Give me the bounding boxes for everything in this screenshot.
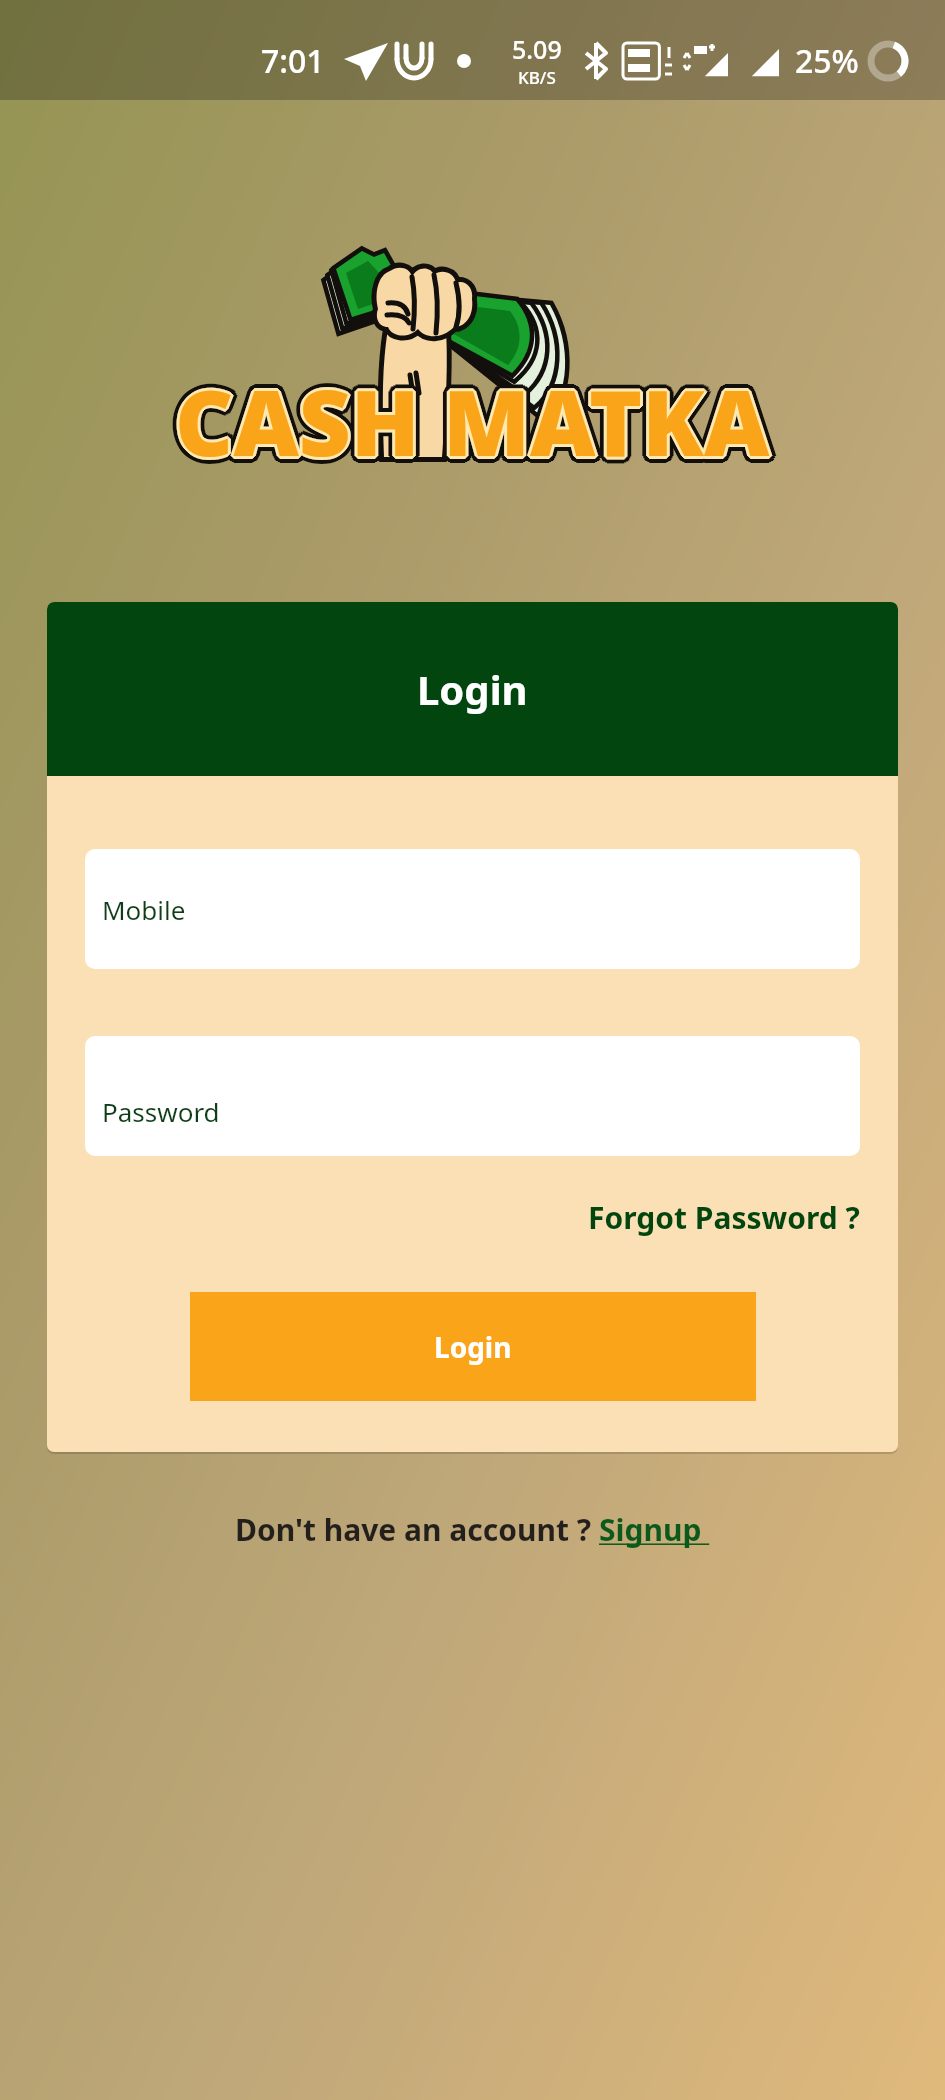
staticText: CASH MATKA: [179, 365, 774, 488]
staticText: CASH MATKA: [170, 356, 765, 479]
staticText: 7:01: [261, 39, 325, 83]
button[interactable]: Signup: [599, 1509, 710, 1550]
staticText: CASH MATKA: [170, 364, 765, 487]
staticText: CASH MATKA: [171, 365, 766, 488]
staticText: 25%: [795, 39, 859, 83]
staticText: CASH MATKA: [173, 361, 768, 484]
staticText: CASH MATKA: [175, 360, 770, 483]
staticText: Signup: [599, 1509, 710, 1550]
staticText: CASH MATKA: [169, 362, 764, 485]
staticText: CASH MATKA: [169, 358, 764, 481]
staticText: CASH MATKA: [180, 356, 775, 479]
staticText: CASH MATKA: [176, 362, 771, 485]
staticText: CASH MATKA: [171, 355, 766, 478]
button[interactable]: Login: [190, 1292, 756, 1401]
staticText: CASH MATKA: [178, 360, 773, 483]
staticText: CASH MATKA: [175, 363, 770, 486]
staticText: CASH MATKA: [177, 354, 772, 477]
button[interactable]: Password: [85, 1036, 860, 1156]
staticText: CASH MATKA: [176, 358, 771, 481]
button[interactable]: Mobile: [85, 849, 860, 969]
staticText: Password: [102, 1094, 220, 1129]
staticText: CASH MATKA: [174, 362, 769, 485]
staticText: CASH MATKA: [181, 358, 776, 481]
staticText: CASH MATKA: [181, 362, 776, 485]
staticText: CASH MATKA: [177, 366, 772, 489]
button[interactable]: Forgot Password ?: [586, 1189, 862, 1246]
staticText: CASH MATKA: [173, 354, 768, 477]
staticText: Login: [434, 1328, 512, 1366]
staticText: CASH MATKA: [182, 360, 777, 483]
staticText: Forgot Password ?: [588, 1197, 860, 1238]
staticText: CASH MATKA: [172, 360, 767, 483]
staticText: CASH MATKA: [173, 366, 768, 489]
staticText: CASH MATKA: [175, 367, 770, 490]
staticText: KB/S: [518, 66, 556, 89]
staticText: Don't have an account ?: [235, 1509, 599, 1550]
staticText: Mobile: [102, 892, 186, 927]
staticText: CASH MATKA: [179, 355, 774, 478]
staticText: Login: [417, 662, 528, 716]
staticText: 5.09: [512, 32, 562, 66]
staticText: CASH MATKA: [175, 357, 770, 480]
other: Cash Matka logo: [320, 245, 570, 460]
staticText: CASH MATKA: [168, 360, 763, 483]
staticText: CASH MATKA: [173, 359, 768, 482]
staticText: CASH MATKA: [177, 359, 772, 482]
staticText: CASH MATKA: [175, 353, 770, 476]
staticText: CASH MATKA: [174, 358, 769, 481]
staticText: CASH MATKA: [180, 364, 775, 487]
staticText: CASH MATKA: [177, 361, 772, 484]
